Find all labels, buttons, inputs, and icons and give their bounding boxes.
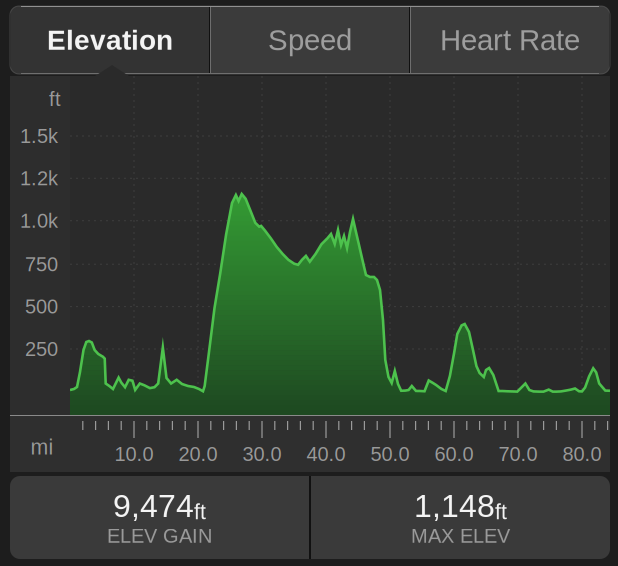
staticText: 1,148 [414,488,495,524]
staticText: Elevation [47,24,173,56]
staticText: ft [495,500,507,524]
staticText: 30.0 [242,443,281,465]
staticText: 9,474 [113,488,194,524]
staticText: 1.5k [20,125,58,147]
staticText: 60.0 [434,443,473,465]
staticText: 500 [25,295,58,318]
staticText: 1.0k [20,209,58,232]
staticText: 40.0 [306,443,345,465]
button[interactable]: Elevation [11,6,209,74]
staticText: 1.2k [20,167,58,189]
button[interactable]: 9,474 [10,476,309,559]
staticText: MAX ELEV [411,525,510,547]
staticText: Speed [268,24,352,56]
staticText: 750 [25,253,58,275]
staticText: ELEV GAIN [107,525,212,547]
staticText: 50.0 [370,443,409,465]
staticText: 10.0 [114,443,153,465]
staticText: 20.0 [178,443,217,465]
staticText: 250 [25,338,58,360]
button[interactable]: 1,148 [311,476,610,559]
button[interactable]: Speed [211,6,409,74]
staticText: ft [194,500,206,524]
button[interactable]: Heart Rate [411,6,609,74]
staticText: ft [49,88,61,110]
staticText: 80.0 [562,443,601,465]
staticText: 70.0 [498,443,537,465]
staticText: mi [30,435,53,459]
staticText: Heart Rate [440,24,580,56]
